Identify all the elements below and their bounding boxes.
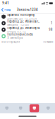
button[interactable]: More: [41, 103, 55, 113]
staticText: 9:41: [2, 1, 9, 5]
button[interactable]: Home: [0, 103, 14, 113]
staticText: 3 сентября: [7, 36, 23, 40]
button[interactable]: Гарантия на покупку: [0, 13, 55, 20]
staticText: сегодня, 12:40: [7, 23, 29, 27]
staticText: Пополнение счёта: [7, 33, 32, 36]
staticText: Перевод дс. Иванову М.: [7, 26, 40, 30]
staticText: 1: [51, 21, 53, 25]
button[interactable]: Все операции: [0, 39, 55, 44]
staticText: 98: [49, 28, 53, 31]
staticText: Показать: [43, 40, 53, 43]
staticText: Гарантия на покупку: [7, 13, 34, 17]
button[interactable]: Payments: [14, 103, 27, 113]
staticText: Перевод дс. Иванову С.: [7, 20, 40, 23]
staticText: действует до 12.2026: [7, 17, 37, 20]
staticText: Назад: [4, 8, 11, 11]
button[interactable]: Пополнение счёта: [0, 33, 55, 39]
button[interactable]: Перевод дс. Иванову М.: [0, 26, 55, 33]
staticText: Заказ №1234: [17, 8, 38, 11]
staticText: Все операции: [1, 40, 20, 43]
button[interactable]: Back: [0, 6, 12, 13]
button[interactable]: Перевод дс. Иванову С.: [0, 20, 55, 26]
button[interactable]: Cards: [27, 103, 41, 113]
staticText: вчера, 09:12: [7, 30, 26, 33]
